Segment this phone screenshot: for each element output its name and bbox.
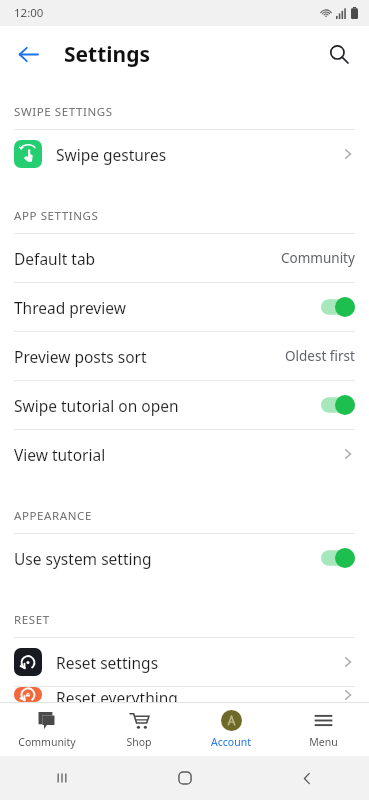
staticText: Swipe gestures xyxy=(56,144,341,165)
staticText: Thread preview xyxy=(14,297,321,318)
button[interactable]: Account xyxy=(185,703,277,756)
staticText: Menu xyxy=(309,735,338,749)
staticText: SWIPE SETTINGS xyxy=(14,104,113,120)
staticText: Settings xyxy=(64,40,151,69)
staticText: Community xyxy=(18,735,76,749)
button[interactable]: Swipe tutorial on open xyxy=(0,381,369,429)
button[interactable]: Menu xyxy=(277,703,369,756)
button[interactable]: Search xyxy=(317,32,361,76)
button[interactable]: Home xyxy=(123,756,246,800)
button[interactable]: Community xyxy=(0,703,93,756)
staticText: Reset everything xyxy=(56,687,341,702)
staticText: 12:00 xyxy=(14,5,44,21)
button[interactable]: Back xyxy=(246,756,369,800)
staticText: APP SETTINGS xyxy=(14,208,99,224)
staticText: Default tab xyxy=(14,248,281,269)
staticText: Use system setting xyxy=(14,548,321,569)
button[interactable]: Reset settings xyxy=(0,638,369,686)
staticText: RESET xyxy=(14,612,50,628)
button[interactable]: Back xyxy=(6,32,50,76)
staticText: View tutorial xyxy=(14,444,341,465)
staticText: Shop xyxy=(126,735,152,749)
staticText: Oldest first xyxy=(285,347,355,365)
button[interactable]: View tutorial xyxy=(0,430,369,478)
button[interactable]: Reset everything xyxy=(0,687,369,702)
button[interactable]: Thread preview xyxy=(0,283,369,331)
button[interactable]: Recent apps xyxy=(0,756,123,800)
button[interactable]: Swipe gestures xyxy=(0,130,369,178)
button[interactable]: Default tab xyxy=(0,234,369,282)
staticText: Community xyxy=(281,249,355,267)
staticText: Reset settings xyxy=(56,652,341,673)
staticText: Swipe tutorial on open xyxy=(14,395,321,416)
button[interactable]: Use system setting xyxy=(0,534,369,582)
staticText: Account xyxy=(211,735,251,749)
button[interactable]: Preview posts sort xyxy=(0,332,369,380)
staticText: Preview posts sort xyxy=(14,346,285,367)
button[interactable]: Shop xyxy=(93,703,185,756)
staticText: APPEARANCE xyxy=(14,508,92,524)
